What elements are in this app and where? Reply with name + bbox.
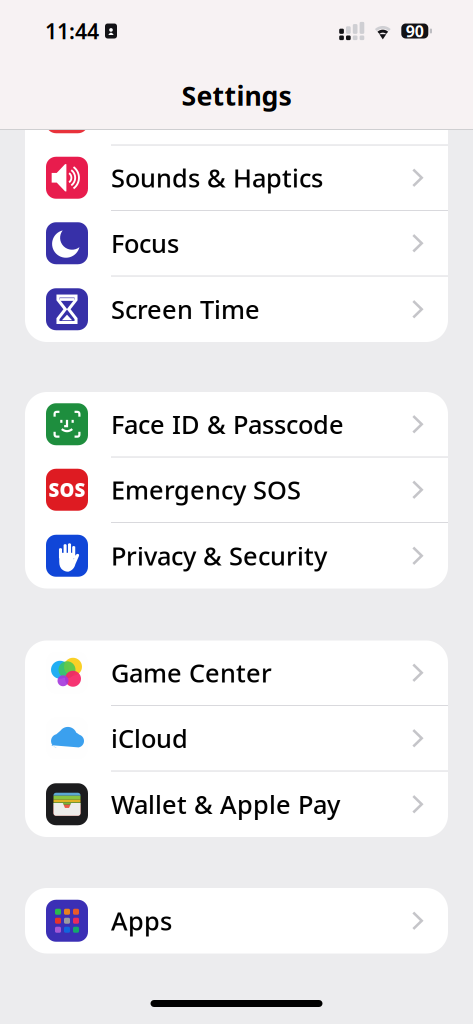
staticText: Screen Time (111, 292, 260, 326)
button[interactable]: iCloud (25, 706, 448, 771)
staticText: Wallet & Apple Pay (111, 787, 340, 821)
staticText: Apps (111, 904, 172, 937)
button[interactable]: Game Center (25, 640, 448, 706)
staticText: Focus (111, 226, 179, 260)
staticText: Game Center (111, 656, 272, 689)
staticText: Emergency SOS (111, 473, 301, 506)
button[interactable]: Face ID & Passcode (25, 392, 448, 457)
staticText: Notifications (111, 95, 265, 129)
button[interactable]: Focus (25, 211, 448, 276)
button[interactable]: Apps (25, 888, 448, 953)
button[interactable]: Sounds & Haptics (25, 145, 448, 211)
staticText: iCloud (111, 721, 188, 755)
button[interactable]: Wallet & Apple Pay (25, 771, 448, 837)
staticText: SOS (48, 477, 85, 502)
staticText: Settings (181, 78, 291, 113)
staticText: Privacy & Security (111, 539, 327, 572)
button[interactable]: Privacy & Security (25, 523, 448, 588)
staticText: 11:44 (45, 17, 99, 45)
button[interactable]: Screen Time (25, 276, 448, 342)
button[interactable]: SOS (25, 457, 448, 523)
staticText: Face ID & Passcode (111, 407, 344, 441)
staticText: 90 (406, 20, 424, 42)
button[interactable]: Notifications (25, 80, 448, 145)
staticText: Sounds & Haptics (111, 161, 323, 194)
